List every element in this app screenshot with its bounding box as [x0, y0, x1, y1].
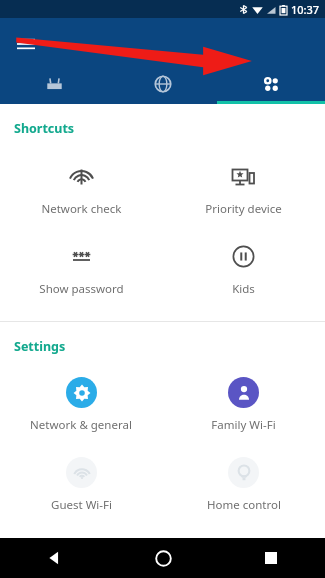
button[interactable]: Show password [0, 235, 162, 301]
button[interactable]: Kids [162, 235, 325, 301]
button[interactable]: Network & general [0, 371, 162, 437]
staticText: Guest Wi-Fi [51, 497, 112, 513]
staticText: Settings [14, 338, 66, 355]
button[interactable]: Network [0, 64, 109, 104]
button[interactable]: Home control [162, 451, 325, 517]
staticText: Family Wi-Fi [211, 417, 276, 433]
button[interactable]: Menu [10, 28, 42, 60]
staticText: 10:37 [291, 2, 320, 17]
button[interactable]: Priority device [162, 155, 325, 221]
button[interactable]: Back [0, 538, 109, 578]
button[interactable]: Home [109, 538, 217, 578]
button[interactable]: Recents [217, 538, 325, 578]
button[interactable]: Network check [0, 155, 162, 221]
button[interactable]: Apps [217, 64, 325, 104]
button[interactable]: Guest Wi-Fi [0, 451, 162, 517]
staticText: Priority device [205, 201, 282, 217]
button[interactable]: Family Wi-Fi [162, 371, 325, 437]
staticText: Network check [41, 201, 122, 217]
staticText: Network & general [30, 417, 132, 433]
button[interactable]: Internet [109, 64, 217, 104]
staticText: Show password [39, 281, 124, 297]
staticText: Kids [232, 281, 255, 297]
staticText: Home control [207, 497, 281, 513]
staticText: Shortcuts [14, 120, 75, 137]
